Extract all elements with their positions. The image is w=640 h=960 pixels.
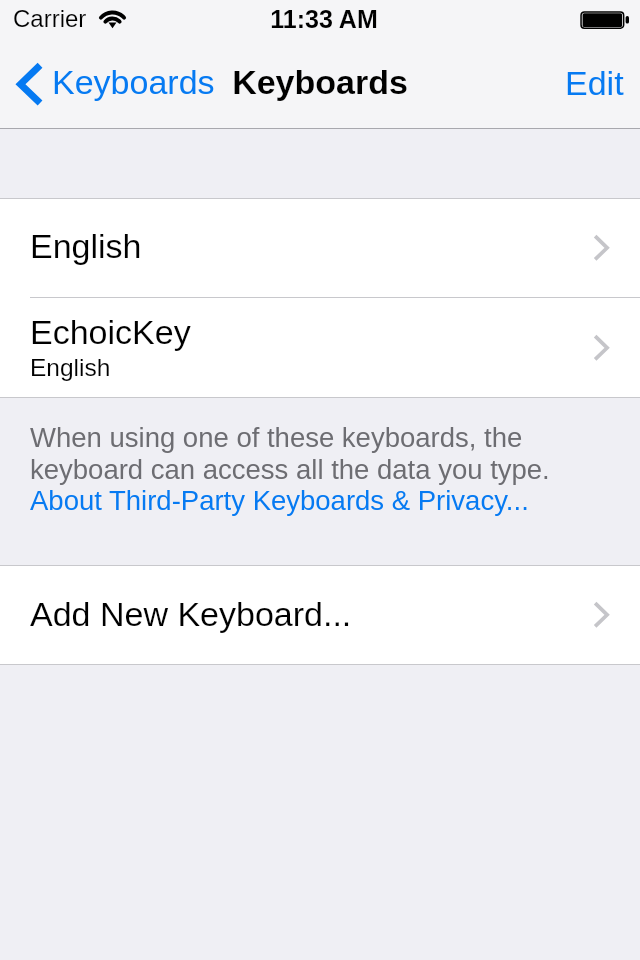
staticText: English	[30, 227, 142, 265]
staticText: Add New Keyboard...	[30, 595, 352, 633]
other: Battery full	[580, 10, 632, 30]
staticText: Edit	[565, 64, 624, 102]
staticText: When using one of these keyboards, the	[30, 422, 523, 453]
other: Back	[16, 63, 42, 105]
staticText: keyboard can access all the data you typ…	[30, 454, 550, 485]
staticText: Keyboards	[52, 63, 215, 101]
button[interactable]: English	[0, 199, 640, 297]
staticText: Keyboards	[0, 63, 640, 101]
staticText: EchoicKey	[30, 313, 191, 351]
button[interactable]: About Third-Party Keyboards & Privacy...	[30, 485, 529, 516]
staticText: Carrier	[13, 5, 87, 32]
staticText: 11:33 AM	[4, 5, 640, 33]
other: Wi-Fi	[98, 8, 128, 32]
button[interactable]: Back	[14, 60, 219, 108]
staticText: English	[30, 354, 111, 381]
button[interactable]: EchoicKey	[0, 298, 640, 397]
button[interactable]: Edit	[547, 50, 640, 116]
button[interactable]: Add New Keyboard...	[0, 566, 640, 664]
